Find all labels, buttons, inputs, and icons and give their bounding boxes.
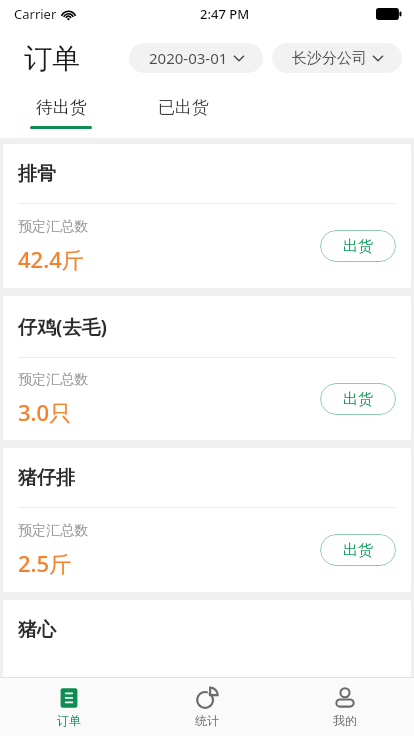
staticText: 统计 [195,713,219,728]
button[interactable]: 2020-03-01 [129,43,263,73]
staticText: 出货 [343,390,373,409]
button[interactable]: Orders [0,678,138,736]
button[interactable]: Profile [276,678,414,736]
staticText: Carrier [14,5,57,23]
staticText: 我的 [333,713,357,728]
staticText: 出货 [343,541,373,560]
staticText: 42.4斤 [18,244,84,274]
button[interactable]: 长沙分公司 [272,43,402,73]
button[interactable]: 出货 [320,383,396,415]
staticText: 排骨 [18,162,56,186]
button[interactable]: 出货 [320,534,396,566]
staticText: 2:47 PM [200,5,250,23]
other: Profile [333,686,357,710]
button[interactable]: 待出货 [24,88,98,129]
staticText: 2020-03-01 [149,48,228,68]
staticText: 2.5斤 [18,548,72,578]
staticText: 仔鸡(去毛) [18,314,107,340]
staticText: 已出货 [158,97,209,118]
button[interactable]: 仔鸡(去毛) [3,296,411,440]
staticText: 订单 [24,41,80,76]
staticText: 猪仔排 [18,466,75,490]
button[interactable]: 已出货 [152,88,215,126]
staticText: 长沙分公司 [292,49,367,68]
staticText: 待出货 [36,97,87,118]
staticText: 预定汇总数 [18,218,88,236]
staticText: 预定汇总数 [18,371,88,389]
button[interactable]: 排骨 [3,144,411,288]
staticText: 猪心 [18,618,56,642]
button[interactable]: Statistics [138,678,276,736]
button[interactable]: 猪心 [3,600,411,677]
other: Orders [57,686,81,710]
staticText: 出货 [343,237,373,256]
button[interactable]: 猪仔排 [3,448,411,592]
other: Statistics [195,686,219,710]
staticText: 订单 [57,713,81,728]
button[interactable]: 出货 [320,230,396,262]
staticText: 预定汇总数 [18,522,88,540]
staticText: 3.0只 [18,397,72,427]
